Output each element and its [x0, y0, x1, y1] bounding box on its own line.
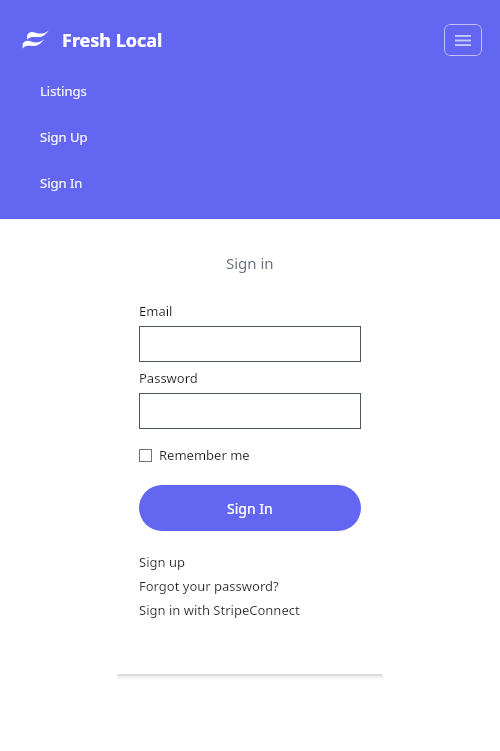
staticText: Listings	[40, 82, 87, 100]
button[interactable]	[139, 326, 361, 362]
button[interactable]	[139, 393, 361, 429]
button[interactable]: Sign up	[139, 553, 361, 571]
button[interactable]: Fresh Local	[22, 27, 163, 53]
button[interactable]: Forgot your password?	[139, 577, 361, 595]
button[interactable]: Sign In	[0, 172, 500, 194]
staticText: Email	[139, 302, 173, 320]
button[interactable]: Remember me	[139, 446, 361, 464]
staticText: Sign Up	[40, 128, 88, 146]
button[interactable]: Open navigation menu	[444, 24, 482, 56]
button[interactable]: Sign in with StripeConnect	[139, 601, 361, 619]
staticText: Remember me	[159, 446, 250, 464]
staticText: Password	[139, 369, 198, 387]
staticText: Sign in with StripeConnect	[139, 601, 300, 619]
button[interactable]: Listings	[0, 80, 500, 102]
staticText: Sign in	[226, 253, 274, 273]
button[interactable]: Sign Up	[0, 126, 500, 148]
staticText: Sign up	[139, 553, 185, 571]
staticText: Forgot your password?	[139, 577, 279, 595]
button[interactable]: Sign In	[139, 485, 361, 531]
staticText: Fresh Local	[62, 28, 163, 53]
staticText: Sign In	[227, 499, 273, 518]
staticText: Sign In	[40, 174, 83, 192]
